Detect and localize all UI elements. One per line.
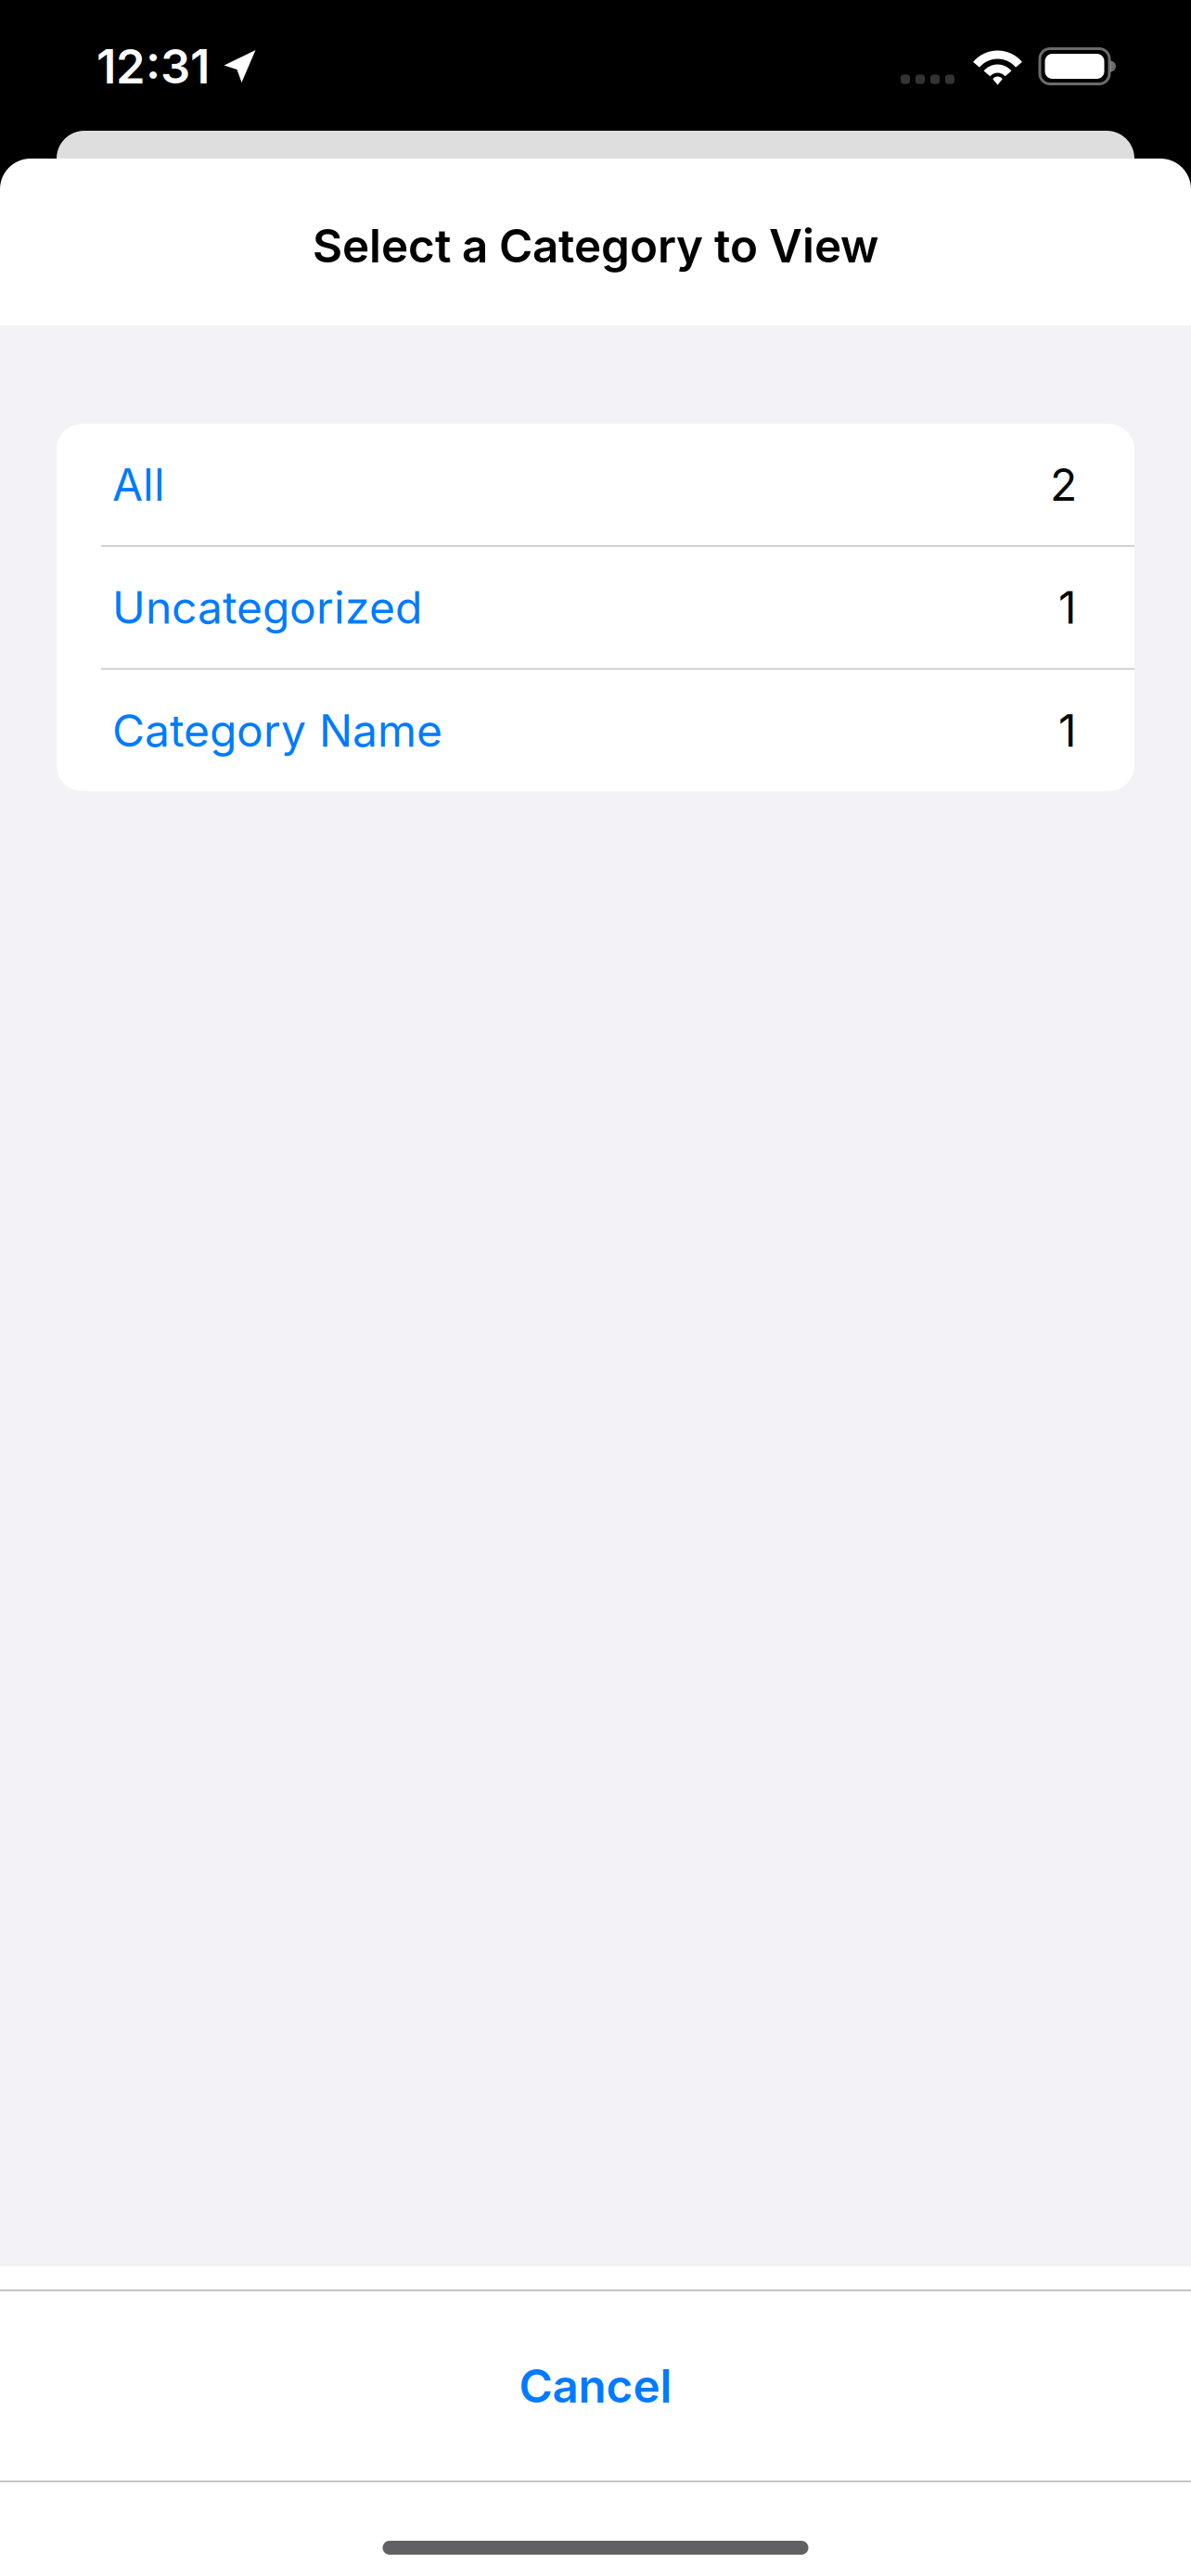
- staticText: 2: [1050, 458, 1077, 511]
- staticText: 12:31: [96, 38, 210, 95]
- staticText: 1: [1058, 704, 1077, 757]
- staticText: 1: [1058, 581, 1077, 634]
- button[interactable]: Uncategorized: [57, 547, 1134, 668]
- staticText: Category Name: [112, 704, 442, 757]
- button[interactable]: All: [57, 424, 1134, 545]
- staticText: Select a Category to View: [313, 218, 878, 273]
- button[interactable]: Category Name: [57, 670, 1134, 791]
- staticText: All: [112, 458, 165, 511]
- button[interactable]: Cancel: [0, 2291, 1191, 2480]
- staticText: Uncategorized: [112, 581, 422, 634]
- staticText: Cancel: [519, 2358, 672, 2414]
